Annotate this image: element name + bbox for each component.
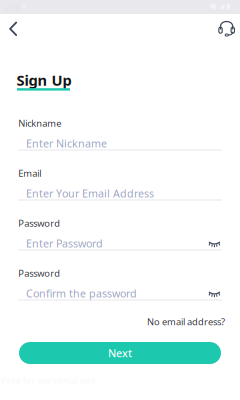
staticText: No email address? xyxy=(147,315,225,328)
button[interactable]: Next xyxy=(19,342,221,364)
staticText: Sign Up xyxy=(17,70,72,90)
staticText: Enter Nickname xyxy=(26,136,107,151)
staticText: Email xyxy=(18,167,41,179)
staticText: Enter Your Email Address xyxy=(26,186,154,201)
staticText: Nickname xyxy=(18,117,61,129)
button[interactable]: Customer support xyxy=(212,15,240,43)
button[interactable]: Show password xyxy=(203,233,224,252)
staticText: Enter Password xyxy=(26,236,103,251)
button[interactable]: Show password xyxy=(203,283,224,302)
staticText: Next xyxy=(108,346,132,360)
button[interactable]: Back xyxy=(0,15,28,43)
staticText: Password xyxy=(18,267,60,279)
button[interactable]: No email address? xyxy=(144,312,228,331)
staticText: Confirm the password xyxy=(26,286,137,301)
staticText: Password xyxy=(18,217,60,229)
